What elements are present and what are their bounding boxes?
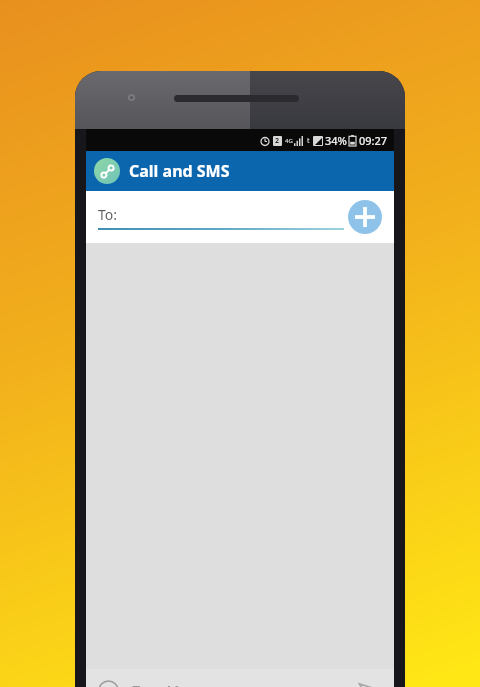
other: App logo xyxy=(94,158,120,184)
staticText: 34% xyxy=(325,133,347,148)
staticText: 09:27 xyxy=(359,133,388,148)
button[interactable]: Emoji xyxy=(96,678,120,687)
staticText: To: xyxy=(98,205,118,224)
staticText: t xyxy=(307,136,310,146)
staticText: 2 xyxy=(275,136,280,146)
button[interactable]: Add contact xyxy=(348,200,382,234)
button[interactable]: Send xyxy=(354,675,384,687)
staticText: Type Message xyxy=(131,680,224,687)
button[interactable]: To: xyxy=(98,205,344,230)
button[interactable]: Type Message xyxy=(131,680,354,687)
staticText: 4G xyxy=(285,137,293,145)
staticText: Call and SMS xyxy=(129,160,230,182)
